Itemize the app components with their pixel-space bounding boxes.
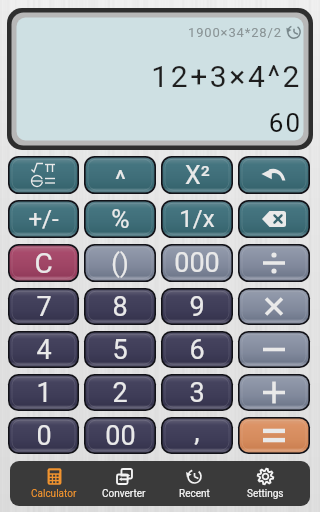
button[interactable]: 7 — [8, 288, 79, 325]
staticText: ^ — [115, 164, 126, 194]
button[interactable]: , — [161, 417, 233, 454]
staticText: 5 — [112, 334, 128, 366]
staticText: 7 — [36, 291, 52, 323]
button[interactable]: History — [286, 24, 302, 40]
staticText: 4 — [36, 334, 52, 366]
button[interactable]: Minus — [238, 331, 310, 368]
staticText: 0 — [36, 420, 52, 452]
button[interactable]: Constants and functions — [8, 156, 79, 194]
button[interactable]: Multiply — [238, 288, 310, 325]
button[interactable]: Converter — [89, 461, 159, 506]
button[interactable]: 4 — [8, 331, 79, 368]
button[interactable]: 5 — [84, 331, 156, 368]
button[interactable]: Plus — [238, 374, 310, 411]
button[interactable]: 1/x — [161, 200, 233, 238]
button[interactable]: 00 — [84, 417, 156, 454]
staticText: 1/x — [179, 205, 215, 233]
button[interactable]: Equals — [238, 417, 310, 454]
staticText: 1900×34*28/2 — [188, 25, 282, 40]
staticText: 8 — [112, 291, 128, 323]
staticText: 00 — [105, 420, 136, 452]
button[interactable]: 6 — [161, 331, 233, 368]
staticText: 9 — [189, 291, 205, 323]
staticText: Settings — [247, 488, 284, 500]
staticText: 1 — [36, 377, 52, 409]
button[interactable]: 3 — [161, 374, 233, 411]
staticText: , — [194, 416, 200, 448]
staticText: Calculator — [31, 488, 77, 500]
button[interactable]: Recent — [159, 461, 230, 506]
button[interactable]: () — [84, 244, 156, 282]
button[interactable]: +/- — [8, 200, 79, 238]
button[interactable]: 8 — [84, 288, 156, 325]
button[interactable]: 1 — [8, 374, 79, 411]
staticText: X² — [185, 161, 210, 190]
staticText: 2 — [112, 377, 128, 409]
staticText: 3 — [189, 377, 205, 409]
staticText: Converter — [102, 488, 146, 500]
button[interactable]: ^ — [84, 156, 156, 194]
staticText: +/- — [28, 205, 59, 233]
button[interactable]: 0 — [8, 417, 79, 454]
button[interactable]: C — [8, 244, 79, 282]
button[interactable]: Calculator — [19, 461, 89, 506]
button[interactable]: % — [84, 200, 156, 238]
staticText: 000 — [174, 247, 220, 279]
staticText: () — [111, 249, 129, 278]
staticText: 60 — [7, 108, 302, 138]
button[interactable]: 9 — [161, 288, 233, 325]
staticText: % — [111, 205, 130, 234]
staticText: Recent — [179, 488, 210, 500]
button[interactable]: Divide — [238, 244, 310, 282]
staticText: C — [34, 247, 53, 280]
staticText: 6 — [189, 334, 205, 366]
button[interactable]: Settings — [230, 461, 301, 506]
button[interactable]: 000 — [161, 244, 233, 282]
button[interactable]: X² — [161, 156, 233, 194]
staticText: 12+3×4^2 — [7, 59, 302, 94]
button[interactable]: 2 — [84, 374, 156, 411]
button[interactable]: Backspace — [238, 200, 310, 238]
button[interactable]: Undo — [238, 156, 310, 194]
